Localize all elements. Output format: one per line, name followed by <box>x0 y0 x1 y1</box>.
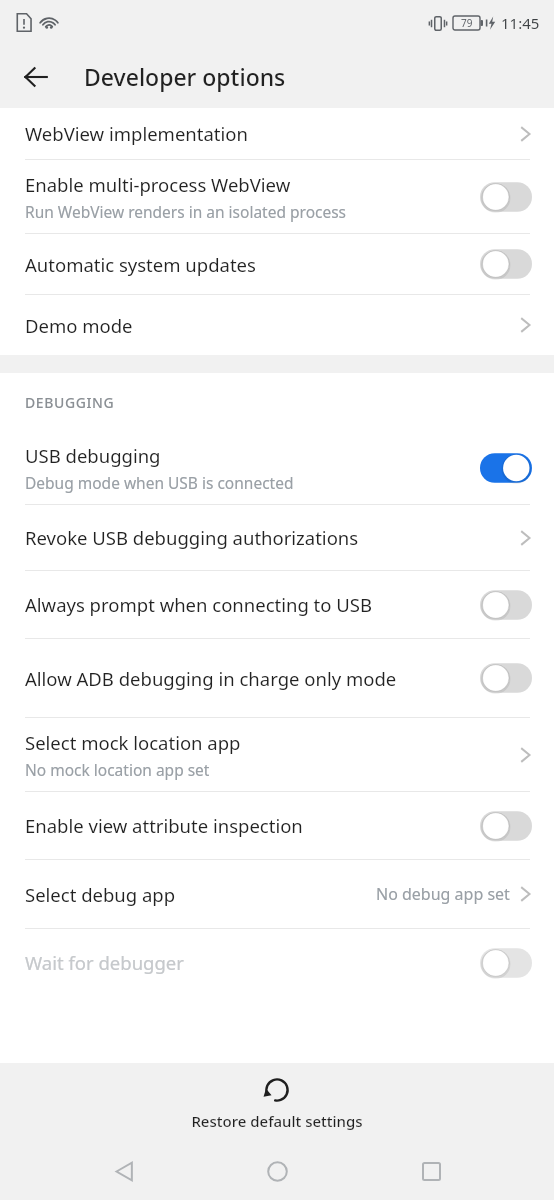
staticText: DEBUGGING <box>25 393 115 412</box>
button[interactable]: Allow ADB debugging in charge only mode <box>0 639 554 717</box>
button[interactable]: Back <box>94 1143 154 1200</box>
button[interactable]: Back <box>12 53 60 101</box>
staticText: Always prompt when connecting to USB <box>25 592 372 617</box>
button[interactable]: Off <box>480 947 532 979</box>
staticText: Run WebView renders in an isolated proce… <box>25 201 347 222</box>
button[interactable]: Enable multi-process WebView <box>0 160 554 233</box>
button[interactable]: Select mock location app <box>0 718 554 791</box>
button[interactable]: On <box>480 452 532 484</box>
staticText: Select mock location app <box>25 730 241 755</box>
staticText: USB debugging <box>25 443 161 468</box>
button[interactable]: USB debugging <box>0 431 554 504</box>
staticText: Allow ADB debugging in charge only mode <box>25 666 397 691</box>
button[interactable]: Off <box>480 589 532 621</box>
button[interactable]: Demo mode <box>0 295 554 355</box>
staticText: Debug mode when USB is connected <box>25 472 294 493</box>
button[interactable]: Off <box>480 662 532 694</box>
button[interactable]: WebView implementation <box>0 108 554 159</box>
staticText: Demo mode <box>25 313 133 338</box>
button[interactable]: Select debug app <box>0 860 554 928</box>
button[interactable]: Always prompt when connecting to USB <box>0 571 554 638</box>
button[interactable]: Restore default settings <box>0 1063 554 1143</box>
staticText: 79 <box>461 16 473 30</box>
button[interactable]: Recent apps <box>401 1143 461 1200</box>
button[interactable]: Wait for debugger <box>0 929 554 996</box>
staticText: Enable multi-process WebView <box>25 172 291 197</box>
staticText: Select debug app <box>25 882 176 907</box>
button[interactable]: Off <box>480 810 532 842</box>
button[interactable]: Off <box>480 181 532 213</box>
staticText: Wait for debugger <box>25 950 184 975</box>
staticText: Revoke USB debugging authorizations <box>25 525 359 550</box>
staticText: No debug app set <box>376 883 510 905</box>
button[interactable]: Home <box>247 1143 307 1200</box>
button[interactable]: Revoke USB debugging authorizations <box>0 505 554 570</box>
staticText: WebView implementation <box>25 121 248 146</box>
button[interactable]: Enable view attribute inspection <box>0 792 554 859</box>
staticText: Enable view attribute inspection <box>25 813 303 838</box>
staticText: Automatic system updates <box>25 252 256 277</box>
staticText: Developer options <box>84 61 286 92</box>
button[interactable]: Off <box>480 248 532 280</box>
staticText: 11:45 <box>501 13 540 33</box>
staticText: No mock location app set <box>25 759 210 780</box>
button[interactable]: Automatic system updates <box>0 234 554 294</box>
staticText: Restore default settings <box>191 1111 363 1131</box>
